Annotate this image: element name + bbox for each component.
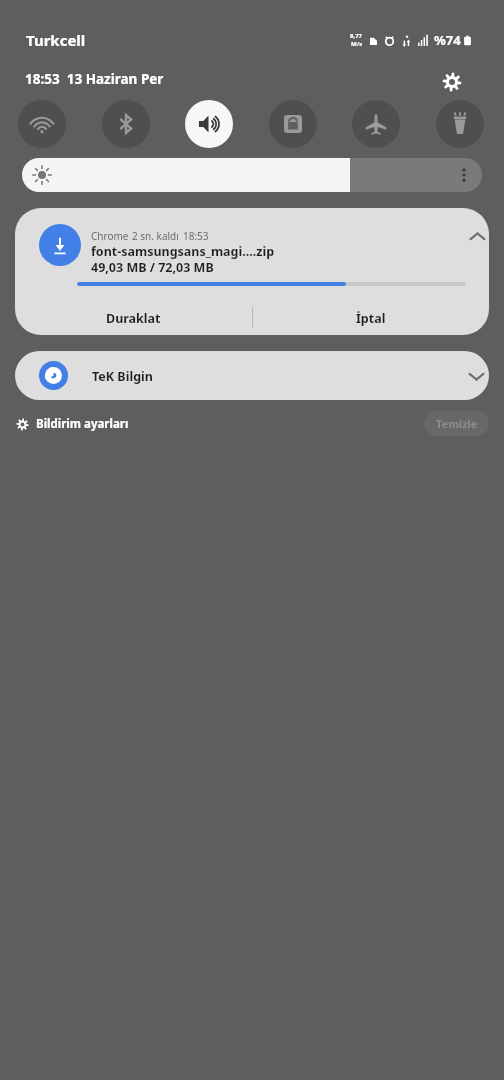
staticText: Bildirim ayarları [36,416,129,432]
staticText: TeK Bilgin [92,368,153,385]
button[interactable]: Duraklat [15,301,252,335]
button[interactable]: Temizle [424,411,489,436]
button[interactable]: Bildirim ayarları [16,412,129,436]
staticText: İptal [356,310,386,327]
button[interactable]: İptal [252,301,489,335]
staticText: Duraklat [106,310,161,327]
button[interactable]: Airplane mode [352,100,400,148]
staticText: %74 [434,31,461,49]
button[interactable]: More brightness settings [454,165,474,185]
staticText: 2 sn. kaldı [132,229,179,243]
staticText: font-samsungsans_magi....zip [91,243,275,260]
staticText: M/s [351,40,363,48]
button[interactable]: Wi-Fi [18,100,66,148]
button[interactable]: Settings [437,67,467,97]
button[interactable]: Auto rotate [269,100,317,148]
staticText: 18:53 [183,229,209,243]
button[interactable]: Collapse [463,222,489,250]
button[interactable]: Brightness [22,158,482,192]
button[interactable]: Bluetooth [102,100,150,148]
staticText: 8,77 [350,32,363,40]
staticText: 49,03 MB / 72,03 MB [91,259,214,276]
button[interactable]: Sound [185,100,233,148]
button[interactable]: Expand [463,363,489,389]
button[interactable]: TeK Bilgin [15,351,489,400]
staticText: 18:53 13 Haziran Per [25,70,164,88]
button[interactable]: Chrome [15,208,489,335]
button[interactable]: Flashlight [436,100,484,148]
staticText: Chrome [91,229,129,243]
staticText: Turkcell [26,30,86,50]
staticText: Temizle [436,416,478,431]
